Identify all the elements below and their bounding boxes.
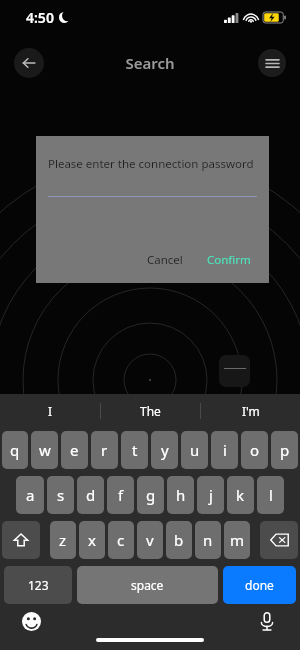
staticText: I [48, 403, 53, 419]
button[interactable]: j [197, 476, 224, 514]
staticText: g [146, 485, 156, 505]
staticText: e [70, 440, 79, 460]
button[interactable]: space [77, 566, 218, 604]
staticText: 123 [28, 577, 49, 593]
button[interactable]: l [257, 476, 284, 514]
staticText: l [269, 485, 273, 505]
button[interactable]: r [91, 431, 118, 469]
button[interactable]: Emoji [20, 610, 42, 632]
button[interactable]: Backspace [260, 521, 298, 559]
staticText: z [59, 530, 67, 550]
button[interactable]: Device [219, 355, 250, 387]
staticText: done [245, 577, 274, 593]
staticText: m [230, 530, 245, 550]
staticText: k [236, 485, 245, 505]
button[interactable]: Cancel [141, 248, 189, 272]
button[interactable]: m [224, 521, 250, 559]
staticText: space [131, 577, 164, 593]
staticText: I'm [242, 403, 260, 419]
button[interactable]: 123 [4, 566, 72, 604]
staticText: Search [125, 53, 175, 73]
button[interactable]: The [101, 394, 200, 427]
staticText: t [132, 440, 138, 460]
staticText: n [203, 530, 213, 550]
button[interactable]: f [107, 476, 134, 514]
staticText: h [176, 485, 186, 505]
button[interactable]: b [166, 521, 192, 559]
button[interactable]: Confirm [203, 248, 255, 272]
staticText: u [190, 440, 200, 460]
button[interactable]: a [16, 476, 44, 514]
button[interactable]: t [121, 431, 148, 469]
button[interactable]: d [77, 476, 104, 514]
staticText: a [26, 485, 35, 505]
button[interactable]: n [195, 521, 221, 559]
staticText: f [118, 485, 124, 505]
button[interactable]: c [108, 521, 134, 559]
staticText: Confirm [207, 252, 251, 268]
button[interactable]: s [47, 476, 74, 514]
staticText: s [57, 485, 65, 505]
button[interactable]: h [167, 476, 194, 514]
button[interactable]: g [137, 476, 164, 514]
staticText: o [250, 440, 260, 460]
button[interactable]: I'm [201, 394, 300, 427]
button[interactable]: q [2, 431, 28, 469]
staticText: Please enter the connection password [48, 156, 254, 172]
staticText: y [161, 440, 169, 460]
button[interactable]: y [151, 431, 178, 469]
staticText: r [101, 440, 108, 460]
staticText: b [174, 530, 184, 550]
staticText: w [39, 440, 51, 460]
button[interactable]: z [50, 521, 76, 559]
staticText: q [10, 440, 20, 460]
staticText: Cancel [147, 252, 183, 268]
staticText: p [280, 440, 290, 460]
button[interactable]: x [79, 521, 105, 559]
button[interactable]: done [223, 566, 296, 604]
staticText: d [86, 485, 96, 505]
button[interactable]: Shift [2, 521, 40, 559]
button[interactable]: p [271, 431, 298, 469]
button[interactable]: u [181, 431, 208, 469]
button[interactable]: Back [14, 48, 44, 78]
staticText: The [140, 403, 161, 419]
button[interactable]: i [211, 431, 238, 469]
button[interactable]: v [137, 521, 163, 559]
button[interactable]: Voice input [256, 610, 278, 632]
button[interactable]: Menu [258, 49, 286, 77]
staticText: 4:50 [26, 8, 54, 27]
staticText: i [223, 440, 227, 460]
button[interactable]: o [241, 431, 268, 469]
button[interactable]: I [0, 394, 100, 427]
staticText: j [209, 485, 213, 505]
staticText: v [146, 530, 154, 550]
button[interactable]: w [31, 431, 58, 469]
staticText: c [117, 530, 125, 550]
staticText: x [88, 530, 96, 550]
button[interactable]: e [61, 431, 88, 469]
button[interactable]: k [227, 476, 254, 514]
